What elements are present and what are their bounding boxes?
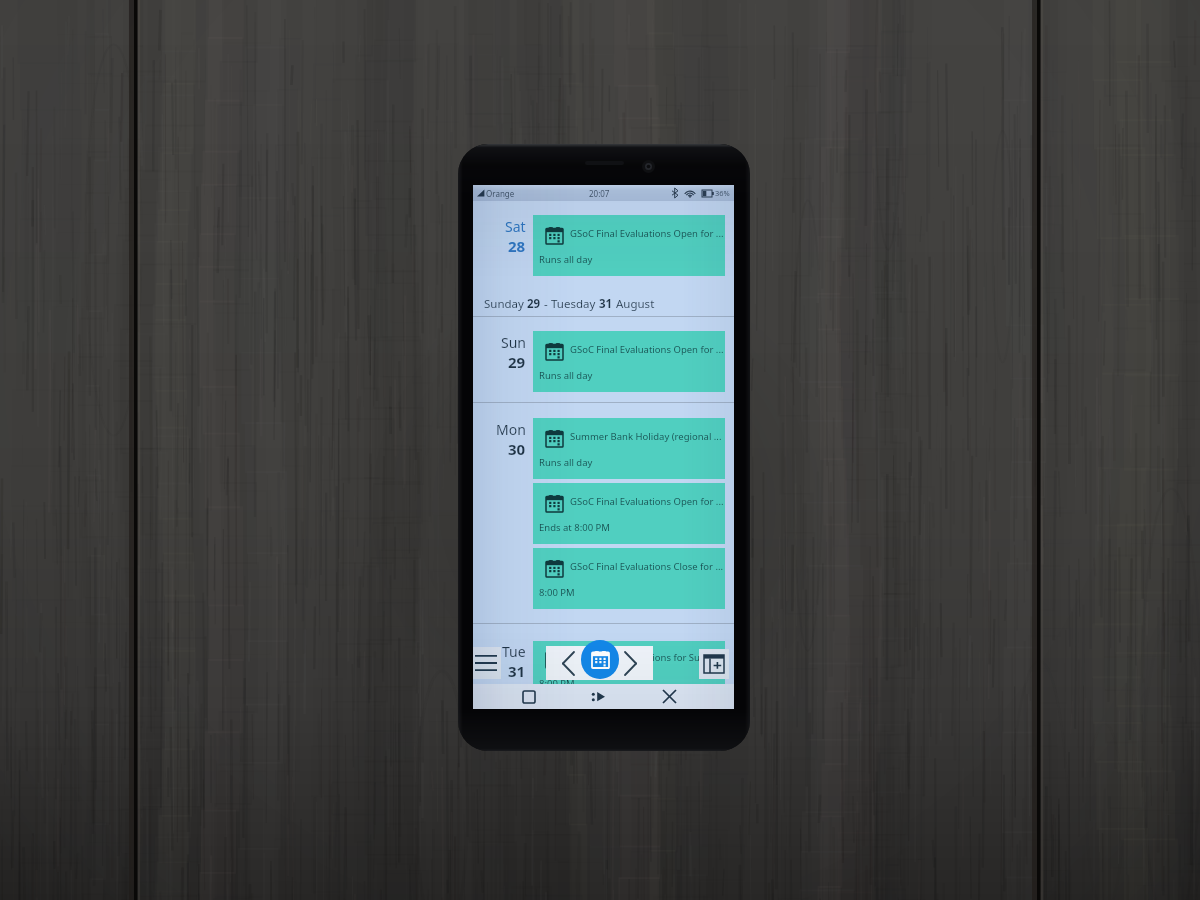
staticText: GSoC Final Evaluations Open for ... <box>570 495 724 508</box>
staticText: Runs all day <box>539 253 593 266</box>
staticText: 29 <box>527 296 541 312</box>
button[interactable]: GSoC Final Evaluations Open for ... <box>533 331 725 392</box>
button[interactable]: Open navigation menu <box>473 647 501 679</box>
staticText: 20:07 <box>589 188 610 199</box>
staticText: 29 <box>508 352 526 372</box>
staticText: 30 <box>508 439 526 459</box>
staticText: 36% <box>715 188 730 198</box>
button[interactable]: Create new event <box>699 649 729 679</box>
button[interactable]: Recent apps <box>511 684 547 709</box>
staticText: Mon <box>496 420 526 439</box>
staticText: GSoC Final Evaluations Close for ... <box>570 560 724 573</box>
button[interactable]: GSoC Final Evaluations for Successful St… <box>533 641 725 702</box>
button[interactable]: Next day <box>609 646 653 680</box>
staticText: Runs all day <box>539 369 593 382</box>
button[interactable]: GSoC Final Evaluations Open for ... <box>533 483 725 544</box>
staticText: Runs all day <box>539 456 593 469</box>
staticText: GSoC Final Evaluations Open for ... <box>570 227 724 240</box>
staticText: Sunday <box>484 296 527 312</box>
staticText: 8:00 PM <box>539 677 575 690</box>
button[interactable]: Previous day <box>546 646 590 680</box>
staticText: 8:00 PM <box>539 586 575 599</box>
button[interactable]: GSoC Final Evaluations Close for ... <box>533 548 725 609</box>
staticText: Sat <box>505 217 526 236</box>
staticText: Summer Bank Holiday (regional ... <box>570 430 722 443</box>
staticText: GSoC Final Evaluations Open for ... <box>570 343 724 356</box>
button[interactable]: GSoC Final Evaluations Open for ... <box>533 215 725 276</box>
staticText: - <box>541 296 551 312</box>
staticText: Orange <box>486 188 515 199</box>
staticText: August <box>613 296 655 312</box>
staticText: Tuesday <box>551 296 599 312</box>
staticText: GSoC Final Evaluations for Successful St… <box>570 651 725 664</box>
staticText: Ends at 8:00 PM <box>539 521 610 534</box>
button[interactable]: Summer Bank Holiday (regional ... <box>533 418 725 479</box>
button[interactable]: Jump to today <box>581 640 619 679</box>
staticText: 28 <box>508 236 526 256</box>
button[interactable]: Close <box>651 684 687 709</box>
button[interactable]: Home <box>580 684 616 709</box>
staticText: Sun <box>501 333 526 352</box>
staticText: Tue <box>502 642 526 661</box>
staticText: 31 <box>508 661 526 681</box>
staticText: 31 <box>599 296 613 312</box>
